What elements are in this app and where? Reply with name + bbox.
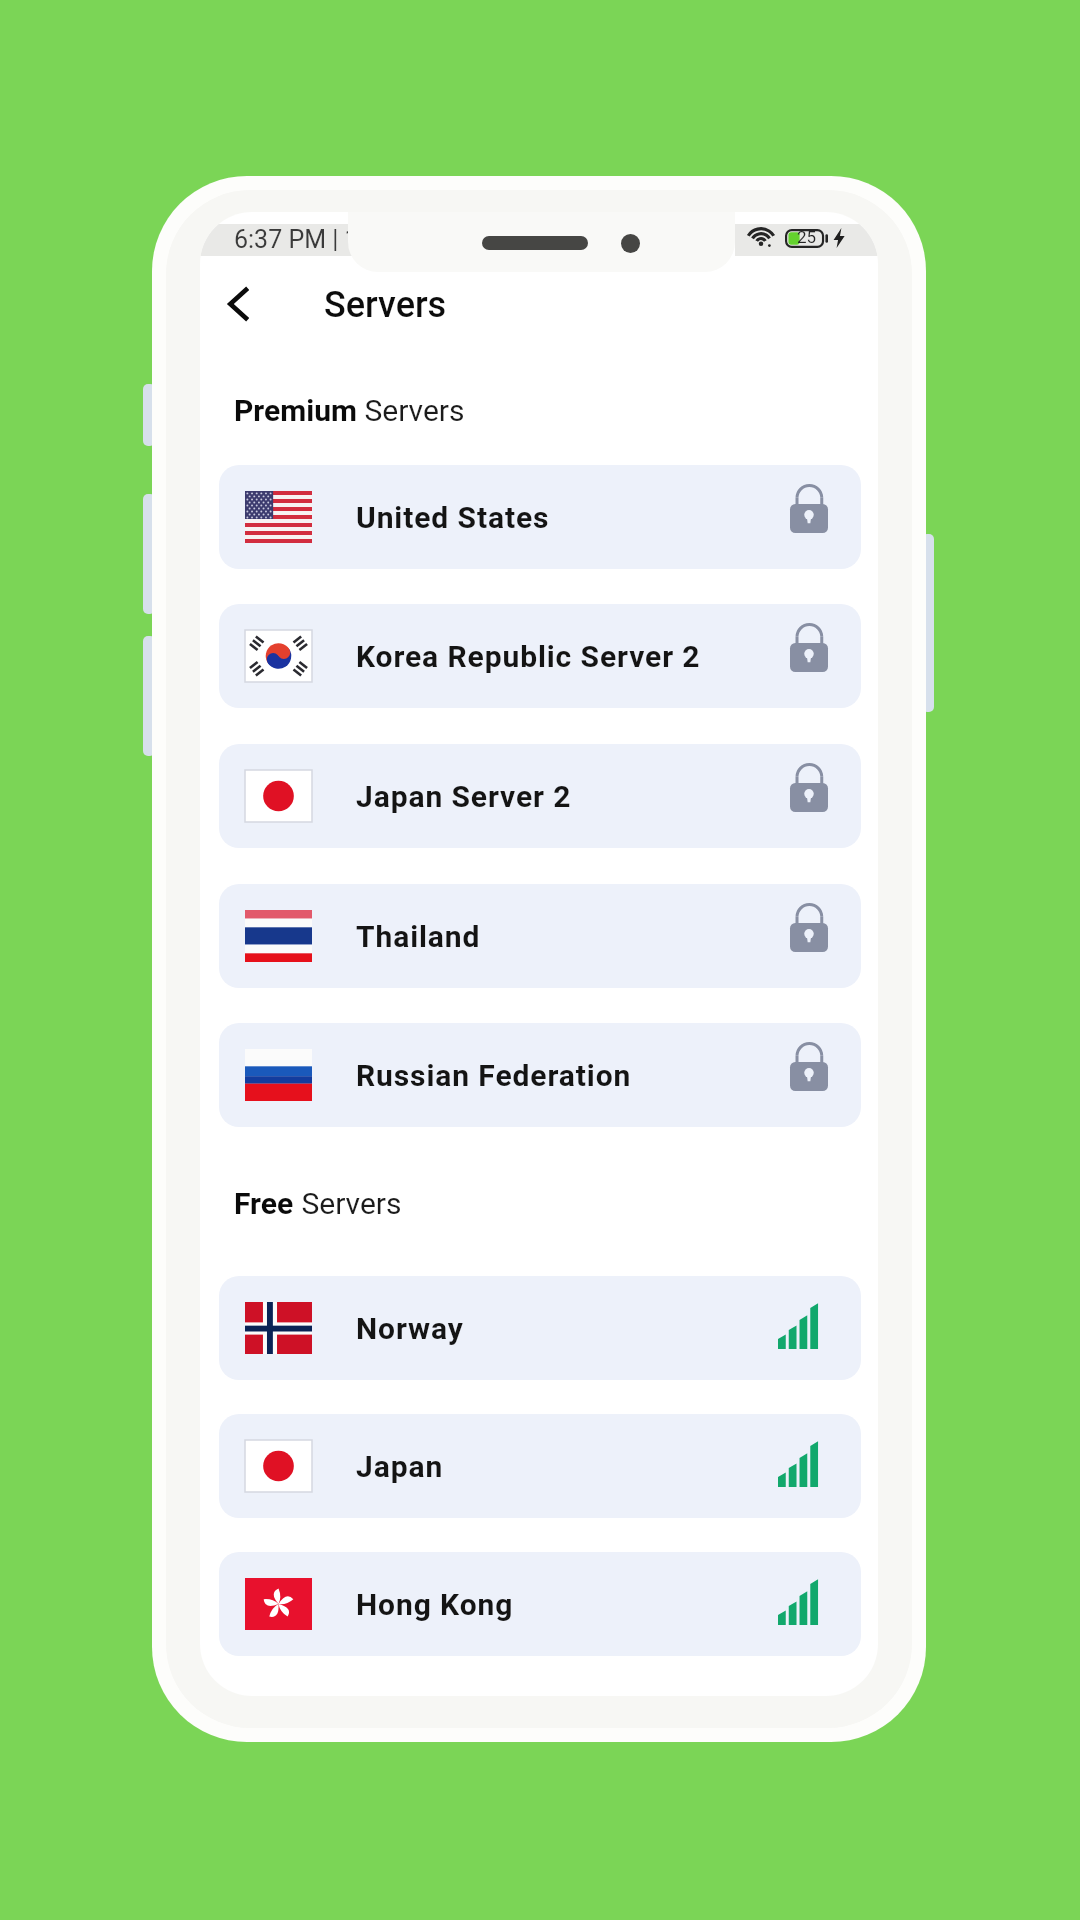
staticText: Servers	[357, 393, 465, 428]
button[interactable]: Back	[206, 271, 272, 337]
button[interactable]: Hong Kong	[219, 1552, 861, 1656]
staticText: Servers	[324, 284, 447, 326]
button[interactable]: Japan Server 2	[219, 744, 861, 848]
button[interactable]: Norway	[219, 1276, 861, 1380]
staticText: Free	[234, 1186, 294, 1221]
button[interactable]: Russian Federation	[219, 1023, 861, 1127]
staticText: Norway	[356, 1311, 464, 1346]
staticText: Russian Federation	[356, 1058, 632, 1093]
staticText: Korea Republic Server 2	[356, 639, 701, 674]
staticText: 6:37 PM | 1	[234, 225, 359, 254]
button[interactable]: Japan	[219, 1414, 861, 1518]
button[interactable]: Korea Republic Server 2	[219, 604, 861, 708]
staticText: 25	[797, 227, 817, 247]
staticText: Premium	[234, 393, 357, 428]
staticText: Servers	[294, 1186, 402, 1221]
staticText: Japan Server 2	[356, 779, 572, 814]
button[interactable]: Thailand	[219, 884, 861, 988]
staticText: Hong Kong	[356, 1587, 514, 1622]
staticText: United States	[356, 500, 550, 535]
button[interactable]: United States	[219, 465, 861, 569]
staticText: Thailand	[356, 919, 481, 954]
staticText: Japan	[356, 1449, 444, 1484]
